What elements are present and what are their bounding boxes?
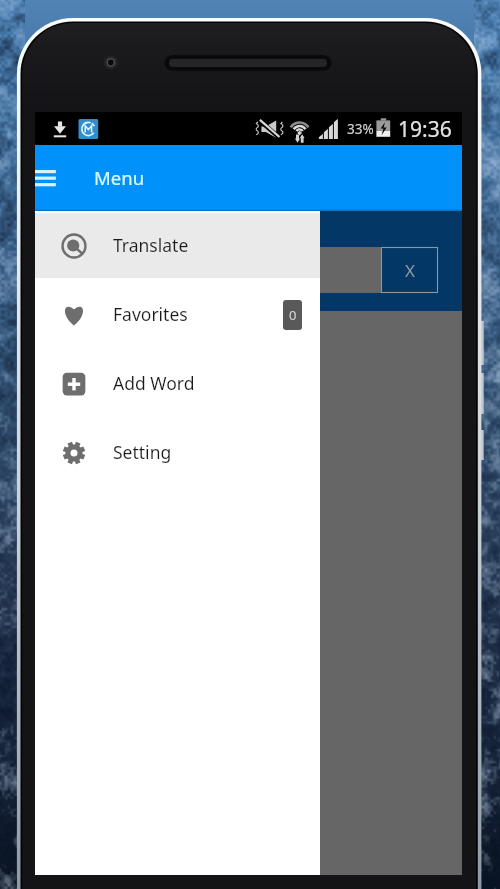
staticText: Add Word <box>113 371 195 395</box>
staticText: 19:36 <box>398 115 452 144</box>
button[interactable]: Add Word <box>35 351 320 416</box>
staticText: X <box>405 259 415 282</box>
button[interactable]: Translate <box>35 213 320 278</box>
staticText: Translate <box>113 233 189 257</box>
staticText: Menu <box>94 165 145 190</box>
button[interactable]: Setting <box>35 420 320 485</box>
staticText: Setting <box>113 440 172 464</box>
button[interactable]: X <box>381 247 438 293</box>
button[interactable]: Open navigation menu <box>23 158 67 198</box>
staticText: 33% <box>347 120 374 138</box>
staticText: Favorites <box>113 302 188 326</box>
staticText: 0 <box>289 306 297 324</box>
button[interactable]: Favorites <box>35 282 320 347</box>
